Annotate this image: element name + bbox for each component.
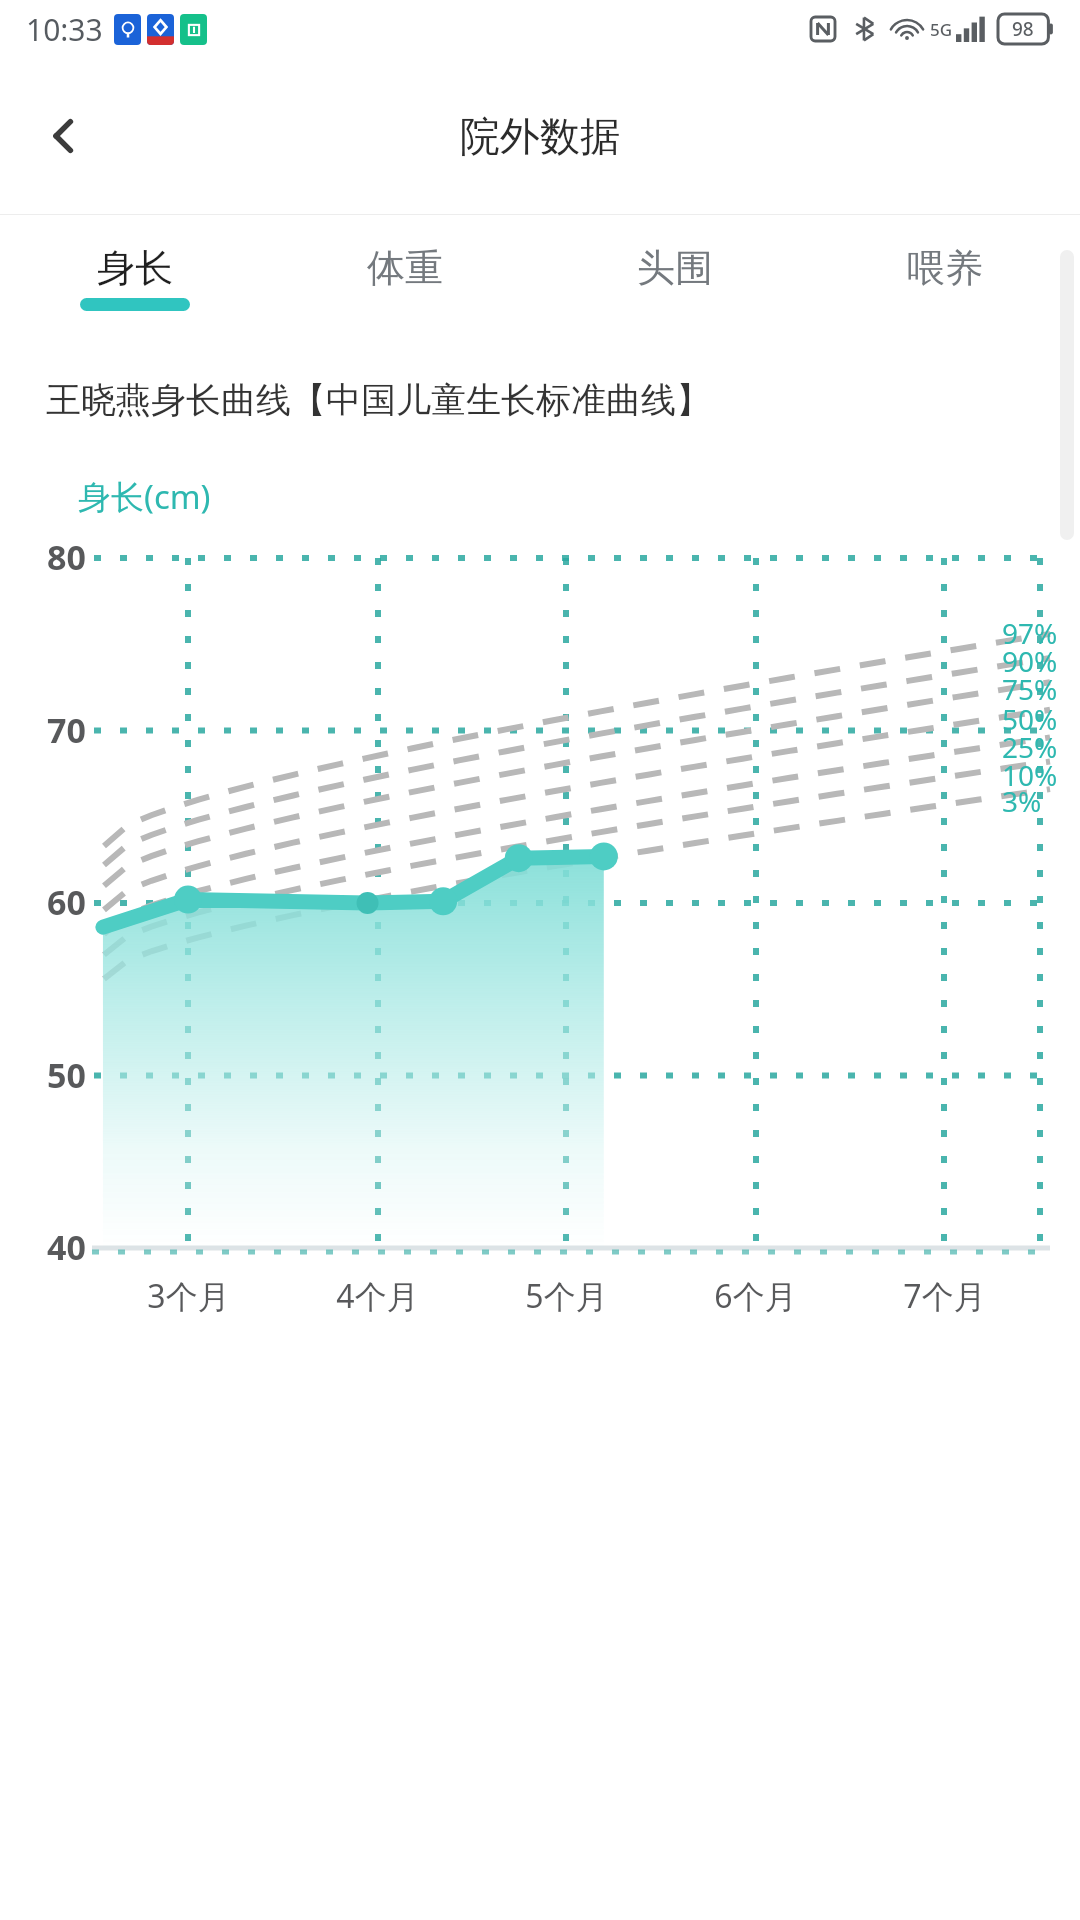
staticText: 4个月	[336, 1274, 419, 1318]
staticText: 7个月	[903, 1274, 986, 1318]
staticText: 97%	[1002, 614, 1058, 652]
button[interactable]: Back	[16, 88, 112, 184]
staticText: 王晓燕身长曲线【中国儿童生长标准曲线】	[46, 378, 711, 422]
button[interactable]: 体重	[270, 215, 540, 340]
staticText: 70	[47, 707, 86, 753]
staticText: 40	[47, 1224, 86, 1270]
staticText: 6个月	[714, 1274, 797, 1318]
staticText: 75%	[1002, 670, 1058, 708]
button[interactable]: 头围	[540, 215, 810, 340]
staticText: 10%	[1002, 756, 1058, 794]
staticText: 50%	[1002, 700, 1058, 738]
staticText: 3%	[1002, 782, 1042, 820]
staticText: 25%	[1002, 728, 1058, 766]
staticText: 喂养	[907, 244, 983, 292]
staticText: 98	[1012, 16, 1034, 42]
staticText: 5G	[930, 18, 953, 41]
staticText: 头围	[637, 244, 713, 292]
button[interactable]: 喂养	[810, 215, 1080, 340]
button[interactable]: 身长	[0, 215, 270, 340]
staticText: 80	[47, 534, 86, 580]
staticText: 3个月	[147, 1274, 230, 1318]
staticText: 体重	[367, 244, 443, 292]
staticText: 身长	[97, 244, 173, 292]
staticText: 院外数据	[460, 111, 620, 161]
staticText: 5个月	[525, 1274, 608, 1318]
staticText: 90%	[1002, 642, 1058, 680]
staticText: 身长(cm)	[78, 474, 211, 519]
staticText: 60	[47, 879, 86, 925]
staticText: 10:33	[26, 9, 103, 50]
staticText: 50	[47, 1052, 86, 1098]
